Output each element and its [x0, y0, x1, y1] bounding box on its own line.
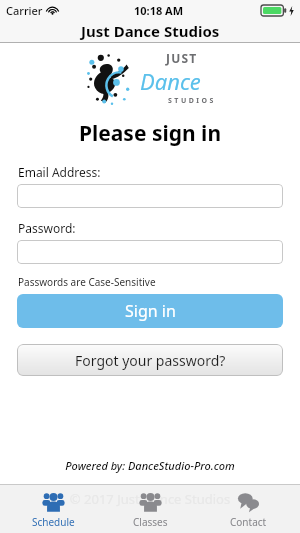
button[interactable]: Classes — [105, 485, 195, 533]
button[interactable] — [17, 240, 283, 264]
staticText: Password: — [18, 220, 76, 236]
staticText: JUST — [166, 50, 198, 66]
staticText: Carrier — [6, 3, 43, 18]
staticText: Passwords are Case-Sensitive — [18, 275, 156, 289]
button[interactable]: Schedule — [8, 485, 98, 533]
staticText: 10:18 AM — [134, 3, 184, 18]
staticText: Schedule — [32, 515, 75, 529]
staticText: STUDIOS — [168, 96, 216, 106]
staticText: Just Dance Studios — [81, 21, 220, 41]
staticText: Dance — [140, 66, 201, 96]
button[interactable]: Contact — [203, 485, 293, 533]
button[interactable]: Forgot your password? — [17, 344, 283, 376]
staticText: Classes — [133, 515, 168, 529]
staticText: Email Address: — [18, 164, 101, 180]
button[interactable] — [17, 184, 283, 208]
staticText: Sign in — [125, 300, 176, 322]
staticText: Contact — [230, 515, 267, 529]
staticText: Powered by: DanceStudio-Pro.com — [0, 458, 300, 473]
button[interactable]: Sign in — [17, 294, 283, 328]
staticText: Forgot your password? — [75, 351, 226, 370]
staticText: © 2017 Just Dance Studios — [0, 490, 300, 508]
staticText: Please sign in — [0, 119, 300, 148]
